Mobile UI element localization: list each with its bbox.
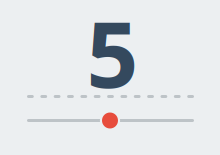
- button[interactable]: Value slider, 5: [93, 103, 127, 137]
- staticText: 5: [86, 0, 138, 114]
